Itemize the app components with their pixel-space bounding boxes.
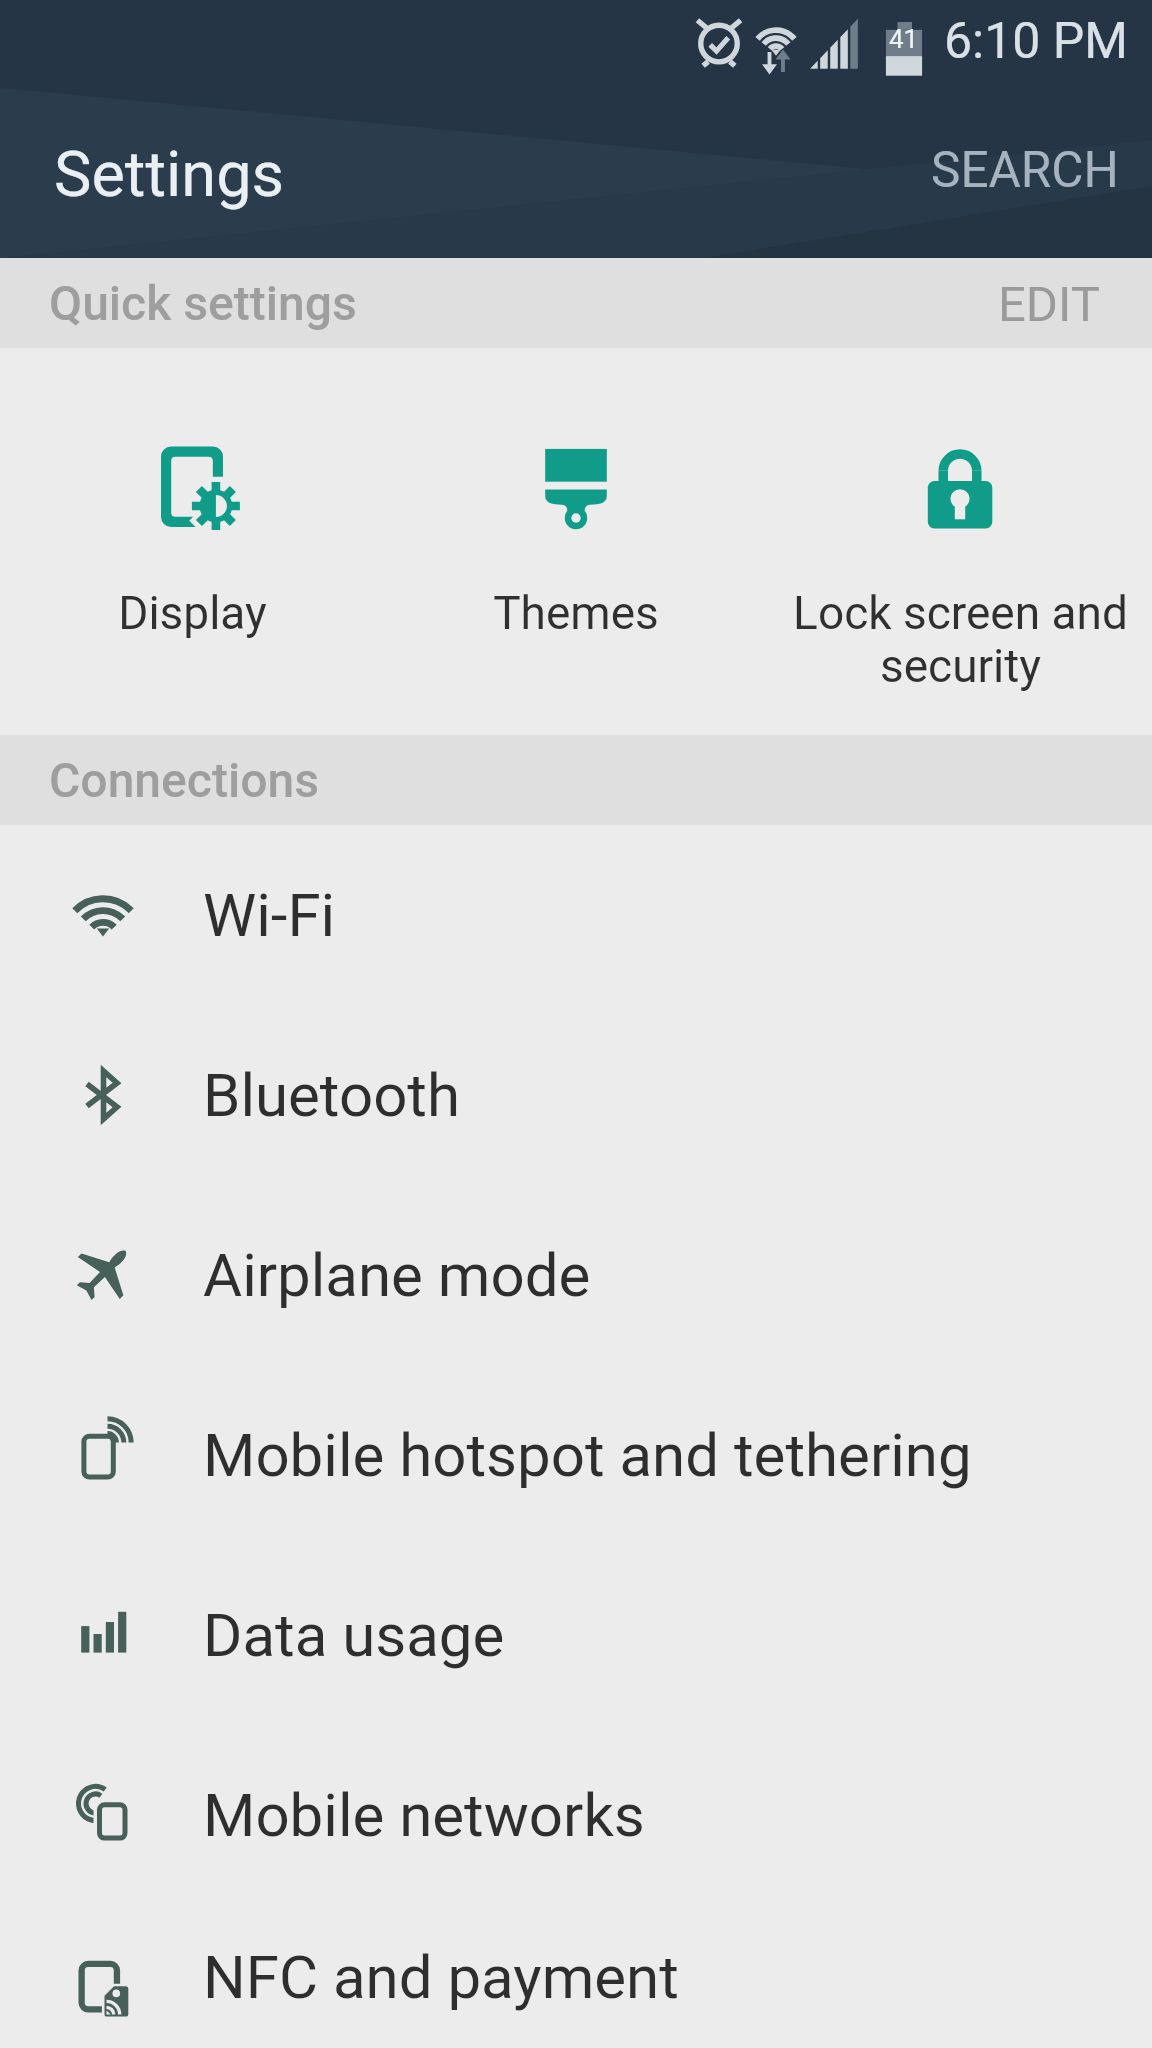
button[interactable]: Display bbox=[0, 348, 384, 735]
staticText: NFC and payment bbox=[203, 1942, 679, 2012]
button[interactable]: Data usage bbox=[0, 1545, 1152, 1725]
staticText: Lock screen and security bbox=[793, 586, 1128, 693]
button[interactable]: Wi-Fi bbox=[0, 825, 1152, 1005]
staticText: Airplane mode bbox=[203, 1240, 591, 1310]
button[interactable]: EDIT bbox=[946, 258, 1152, 348]
button[interactable]: Bluetooth bbox=[0, 1005, 1152, 1185]
button[interactable]: Mobile hotspot and tethering bbox=[0, 1365, 1152, 1545]
staticText: Themes bbox=[493, 586, 659, 640]
staticText: Wi-Fi bbox=[203, 880, 336, 950]
button[interactable]: NFC and payment bbox=[0, 1905, 1152, 2048]
staticText: SEARCH bbox=[931, 141, 1119, 199]
staticText: Connections bbox=[49, 752, 320, 808]
button[interactable]: SEARCH bbox=[901, 0, 1152, 229]
button[interactable]: Themes bbox=[384, 348, 768, 735]
staticText: EDIT bbox=[998, 276, 1100, 330]
button[interactable]: Lock screen and security bbox=[768, 348, 1152, 735]
button[interactable]: Mobile networks bbox=[0, 1725, 1152, 1905]
staticText: Data usage bbox=[203, 1600, 505, 1670]
staticText: Settings bbox=[54, 138, 285, 212]
staticText: Bluetooth bbox=[203, 1060, 461, 1130]
staticText: Display bbox=[118, 586, 267, 640]
staticText: Mobile networks bbox=[203, 1780, 645, 1850]
staticText: Quick settings bbox=[49, 275, 357, 331]
staticText: 6:10 PM bbox=[944, 12, 1129, 71]
staticText: Mobile hotspot and tethering bbox=[203, 1420, 972, 1490]
button[interactable]: Airplane mode bbox=[0, 1185, 1152, 1365]
staticText: 41 bbox=[889, 24, 919, 54]
